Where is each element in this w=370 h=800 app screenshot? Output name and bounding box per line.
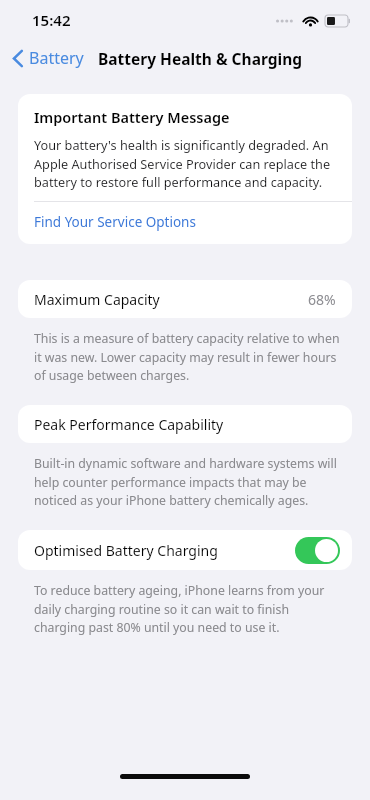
- staticText: 68%: [308, 290, 336, 309]
- button[interactable]: Maximum Capacity: [18, 280, 352, 318]
- button[interactable]: Peak Performance Capability: [18, 405, 352, 443]
- other: Back: [12, 49, 24, 68]
- staticText: This is a measure of battery capacity re…: [34, 330, 340, 383]
- staticText: Battery: [29, 47, 84, 69]
- staticText: Maximum Capacity: [34, 290, 308, 309]
- staticText: 15:42: [32, 10, 71, 30]
- staticText: Peak Performance Capability: [34, 415, 336, 434]
- button[interactable]: Find Your Service Options: [18, 202, 352, 244]
- staticText: Built-in dynamic software and hardware s…: [34, 455, 340, 508]
- button[interactable]: Optimised Battery Charging toggle: [295, 537, 340, 564]
- staticText: Important Battery Message: [34, 107, 230, 127]
- staticText: Your battery's health is significantly d…: [34, 136, 334, 190]
- button[interactable]: Optimised Battery Charging: [18, 530, 352, 570]
- staticText: Battery Health & Charging: [98, 48, 302, 69]
- button[interactable]: Back: [8, 43, 88, 73]
- staticText: Find Your Service Options: [34, 213, 196, 231]
- staticText: Optimised Battery Charging: [34, 541, 295, 560]
- staticText: To reduce battery ageing, iPhone learns …: [34, 582, 340, 635]
